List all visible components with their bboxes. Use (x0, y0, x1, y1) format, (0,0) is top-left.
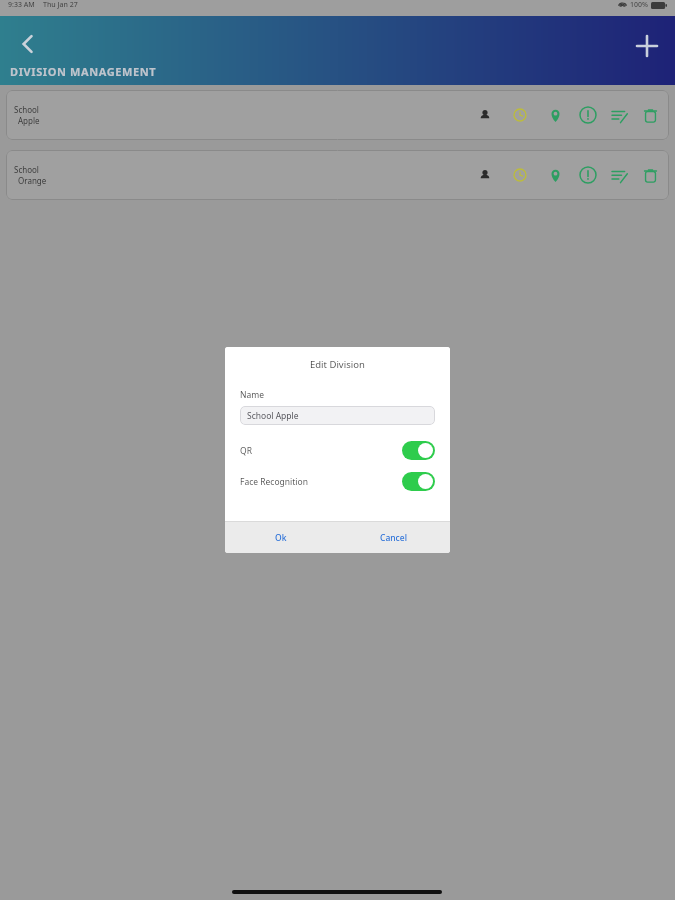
button[interactable]: Delete (639, 164, 661, 186)
button[interactable]: School Apple (240, 406, 435, 425)
staticText: School (14, 104, 39, 115)
button[interactable]: Back (6, 22, 50, 66)
button[interactable]: Info (577, 104, 599, 126)
button[interactable]: Info (577, 164, 599, 186)
staticText: Face Recognition (240, 476, 308, 488)
staticText: DIVISION MANAGEMENT (10, 64, 157, 79)
staticText: Cancel (380, 532, 407, 544)
button[interactable]: Person (474, 164, 496, 186)
staticText: Edit Division (310, 358, 365, 371)
staticText: Ok (275, 532, 287, 544)
staticText: Apple (18, 115, 40, 126)
staticText: 9:33 AM (8, 0, 35, 10)
button[interactable]: School (6, 150, 669, 200)
staticText: School Apple (247, 410, 299, 422)
button[interactable]: Ok (225, 522, 337, 553)
button[interactable]: Schedule (509, 164, 531, 186)
button[interactable]: Face Recognition (240, 472, 435, 491)
staticText: School (14, 164, 39, 175)
button[interactable]: Add (627, 26, 667, 66)
button[interactable]: Edit (608, 164, 630, 186)
button[interactable]: Person (474, 104, 496, 126)
staticText: Thu Jan 27 (43, 0, 78, 10)
staticText: 100% (630, 0, 648, 10)
button[interactable]: Schedule (509, 104, 531, 126)
button[interactable]: Edit (608, 104, 630, 126)
staticText: QR (240, 445, 252, 457)
staticText: Orange (18, 175, 47, 186)
button[interactable]: QR (240, 441, 435, 460)
button[interactable]: Delete (639, 104, 661, 126)
button[interactable]: Location (544, 104, 566, 126)
button[interactable]: Cancel (337, 522, 450, 553)
staticText: Name (240, 389, 264, 401)
button[interactable]: School (6, 90, 669, 140)
button[interactable]: Location (544, 164, 566, 186)
